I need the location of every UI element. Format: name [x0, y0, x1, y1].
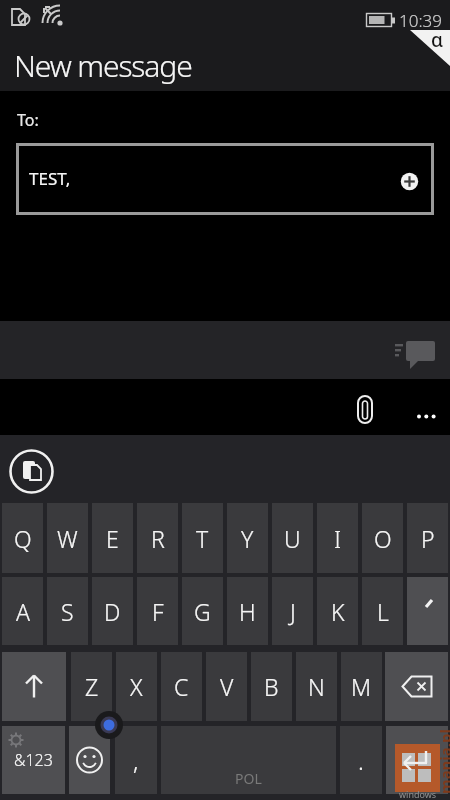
button[interactable]: Z	[71, 652, 112, 721]
staticText: ,	[133, 744, 139, 777]
staticText: L	[377, 596, 389, 627]
button[interactable]: U	[272, 503, 313, 573]
staticText: To:	[17, 109, 39, 131]
button[interactable]	[410, 28, 450, 66]
staticText: P	[421, 523, 435, 554]
staticText: New message	[14, 45, 192, 86]
button[interactable]: Q	[2, 503, 43, 573]
button[interactable]: L	[362, 577, 403, 645]
staticText: Y	[241, 523, 254, 554]
staticText: &123	[14, 749, 53, 771]
button[interactable]	[407, 577, 448, 645]
button[interactable]	[408, 398, 448, 434]
button[interactable]: N	[296, 652, 337, 721]
button[interactable]: TEST,	[16, 143, 434, 215]
staticText: G	[194, 596, 211, 627]
button[interactable]	[385, 652, 448, 721]
staticText: F	[152, 596, 164, 627]
button[interactable]: K	[317, 577, 358, 645]
button[interactable]: &123	[2, 726, 65, 794]
button[interactable]: F	[137, 577, 178, 645]
button[interactable]: I	[317, 503, 358, 573]
button[interactable]	[386, 726, 448, 794]
button[interactable]	[394, 165, 426, 198]
button[interactable]: Y	[227, 503, 268, 573]
staticText: D	[104, 596, 121, 627]
staticText: Q	[14, 523, 32, 554]
button[interactable]: D	[92, 577, 133, 645]
staticText: O	[374, 523, 392, 554]
staticText: Z	[85, 671, 99, 702]
button[interactable]	[69, 726, 110, 794]
button[interactable]: V	[206, 652, 247, 721]
staticText: A	[16, 596, 30, 627]
button[interactable]: W	[47, 503, 88, 573]
button[interactable]	[345, 388, 385, 432]
button[interactable]: A	[2, 577, 43, 645]
staticText: M	[351, 671, 372, 702]
staticText: α	[431, 27, 444, 53]
staticText: R	[151, 523, 165, 554]
button[interactable]: ,	[115, 726, 157, 794]
staticText: H	[239, 596, 256, 627]
button[interactable]: X	[116, 652, 157, 721]
button[interactable]: R	[137, 503, 178, 573]
staticText: U	[284, 523, 301, 554]
staticText: J	[290, 596, 296, 627]
button[interactable]	[8, 448, 55, 495]
staticText: TEST,	[29, 167, 71, 190]
staticText: .	[358, 744, 364, 777]
button[interactable]: J	[272, 577, 313, 645]
staticText: 10:39	[399, 9, 442, 32]
staticText: W	[57, 523, 78, 554]
button[interactable]: H	[227, 577, 268, 645]
staticText: V	[220, 671, 234, 702]
staticText: mania.pl	[435, 729, 450, 794]
button[interactable]: M	[341, 652, 382, 721]
staticText: N	[308, 671, 325, 702]
button[interactable]: POL	[161, 726, 336, 794]
staticText: POL	[235, 769, 262, 788]
button[interactable]: C	[161, 652, 202, 721]
button[interactable]: O	[362, 503, 403, 573]
button[interactable]: E	[92, 503, 133, 573]
staticText: windows	[399, 788, 437, 800]
staticText: X	[130, 671, 143, 702]
staticText: K	[331, 596, 345, 627]
staticText: E	[106, 523, 119, 554]
button[interactable]	[2, 652, 66, 721]
staticText: T	[196, 523, 209, 554]
button[interactable]: B	[251, 652, 292, 721]
button[interactable]: S	[47, 577, 88, 645]
button[interactable]: T	[182, 503, 223, 573]
button[interactable]: G	[182, 577, 223, 645]
staticText: C	[174, 671, 189, 702]
button[interactable]: P	[407, 503, 448, 573]
staticText: I	[334, 523, 342, 554]
staticText: S	[61, 596, 74, 627]
staticText: B	[264, 671, 279, 702]
button[interactable]	[0, 321, 450, 379]
button[interactable]: .	[340, 726, 382, 794]
